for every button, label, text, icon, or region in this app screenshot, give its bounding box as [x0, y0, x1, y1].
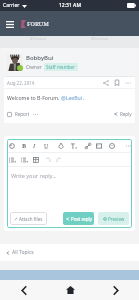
button[interactable]: All Topics	[0, 244, 139, 261]
staticText: .	[83, 94, 85, 101]
button[interactable]: Bookmark	[113, 79, 121, 87]
staticText: FORUM	[27, 20, 49, 28]
button[interactable]: I	[30, 142, 38, 150]
button[interactable]: Attach files	[10, 212, 47, 225]
button[interactable]: Forward	[93, 280, 139, 300]
button[interactable]: Back	[0, 280, 47, 300]
button[interactable]: Font size	[70, 142, 78, 150]
button[interactable]: Undo	[44, 156, 52, 164]
staticText: Post reply	[71, 216, 92, 222]
staticText: @LeeBui	[61, 94, 83, 101]
staticText: Staff member	[46, 64, 76, 70]
button[interactable]: Highlight	[57, 142, 65, 150]
button[interactable]: Redo	[55, 156, 63, 164]
staticText: Attach files	[19, 216, 43, 222]
staticText: U	[44, 142, 49, 150]
button[interactable]: Numbered list	[20, 156, 28, 164]
staticText: B	[22, 142, 27, 150]
staticText: Reply	[120, 111, 132, 117]
button[interactable]: Table	[32, 156, 40, 164]
staticText: Welcome	[91, 36, 109, 41]
button[interactable]: Share	[102, 79, 110, 87]
button[interactable]: More	[125, 142, 132, 150]
staticText: Aug 22, 2014	[7, 80, 35, 86]
button[interactable]: Insert image	[95, 142, 103, 150]
staticText: BobbyBui	[26, 54, 54, 62]
button[interactable]: Link	[84, 142, 92, 150]
staticText: 12:31 AM	[59, 2, 81, 9]
button[interactable]: Menu	[3, 17, 17, 31]
staticText: Carrier	[3, 2, 20, 9]
button[interactable]: Home	[47, 280, 93, 300]
button[interactable]: B	[20, 142, 28, 150]
staticText: All Topics	[12, 249, 34, 256]
staticText: Owner	[26, 64, 42, 71]
staticText: I	[33, 142, 36, 150]
button[interactable]: Preview	[98, 212, 129, 225]
staticText: Welcome to B-Forum,	[7, 94, 61, 101]
button[interactable]: Write your reply...	[7, 167, 132, 209]
button[interactable]: More options	[124, 79, 132, 87]
button[interactable]: Post reply	[63, 212, 94, 225]
button[interactable]: Text color	[8, 142, 16, 150]
button[interactable]: Emoji	[108, 142, 116, 150]
staticText: Report	[15, 111, 30, 117]
button[interactable]: Report	[7, 111, 30, 117]
button[interactable]: Reply	[114, 111, 132, 117]
staticText: Write your reply...	[11, 172, 57, 179]
staticText: Preview	[108, 216, 125, 222]
button[interactable]: U	[42, 142, 50, 150]
staticText: B-Forum	[30, 36, 47, 41]
button[interactable]: B-Forum home	[21, 20, 49, 28]
button[interactable]: Bulleted list	[8, 156, 16, 164]
